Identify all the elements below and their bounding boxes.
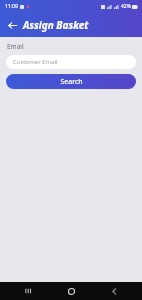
button[interactable]: Back bbox=[104, 282, 124, 300]
button[interactable]: Recents bbox=[18, 282, 38, 300]
button[interactable]: Back bbox=[4, 17, 20, 33]
button[interactable]: Search bbox=[6, 74, 136, 89]
staticText: Assign Basket bbox=[23, 18, 89, 32]
staticText: Email bbox=[7, 42, 24, 51]
staticText: 11:09 bbox=[5, 3, 18, 10]
staticText: Search bbox=[60, 77, 83, 87]
button[interactable]: Home bbox=[61, 282, 81, 300]
staticText: Customer Email bbox=[13, 58, 58, 66]
button[interactable]: Customer Email bbox=[6, 55, 136, 69]
staticText: 42% bbox=[121, 3, 131, 10]
